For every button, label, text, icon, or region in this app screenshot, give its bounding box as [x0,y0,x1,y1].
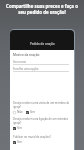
other: Toggle [13,141,16,144]
staticText: Escolha uma opção [13,67,39,71]
staticText: Sim [30,110,35,114]
button[interactable]: Toggle [13,110,23,114]
staticText: Sim [17,126,22,130]
staticText: Deseja receber uma visita de um membro d… [13,101,69,109]
staticText: Deseja receber uma ligação de um membro … [13,117,69,125]
other: Toggle [26,111,29,114]
button[interactable]: Escolha uma opção [13,67,69,72]
staticText: Publicar no mural de orações? [13,135,51,139]
staticText: Não [17,110,23,114]
staticText: Motivo da oração [13,53,40,57]
button[interactable]: Toggle [13,140,22,144]
other: Toggle [13,111,16,114]
button[interactable]: Toggle [26,110,35,114]
staticText: Compartilhe suas preces e faça o seu ped… [6,3,78,15]
staticText: Pedido de oração [30,42,55,46]
staticText: Seu nome [13,60,27,64]
button[interactable]: Seu nome [13,60,69,65]
button[interactable]: Toggle [13,126,22,130]
other: Toggle [13,127,16,130]
staticText: Sim [17,140,22,144]
